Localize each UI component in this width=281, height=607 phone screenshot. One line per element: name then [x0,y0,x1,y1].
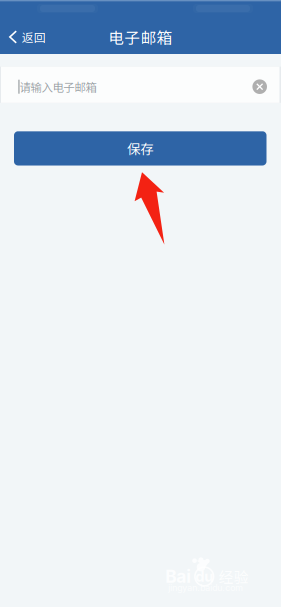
staticText: Bai [165,566,191,587]
staticText: 保存 [127,139,153,158]
staticText: 返回 [22,28,46,45]
staticText: du [195,568,213,585]
staticText: 经验 [219,566,249,587]
staticText: 电子邮箱 [108,26,172,48]
staticText: jingyan.baidu.com [168,582,243,593]
button[interactable]: 清除 [246,67,279,103]
staticText: 请输入电子邮箱 [19,78,96,95]
button[interactable]: 保存 [14,131,266,165]
button[interactable]: 返回 [0,22,54,52]
